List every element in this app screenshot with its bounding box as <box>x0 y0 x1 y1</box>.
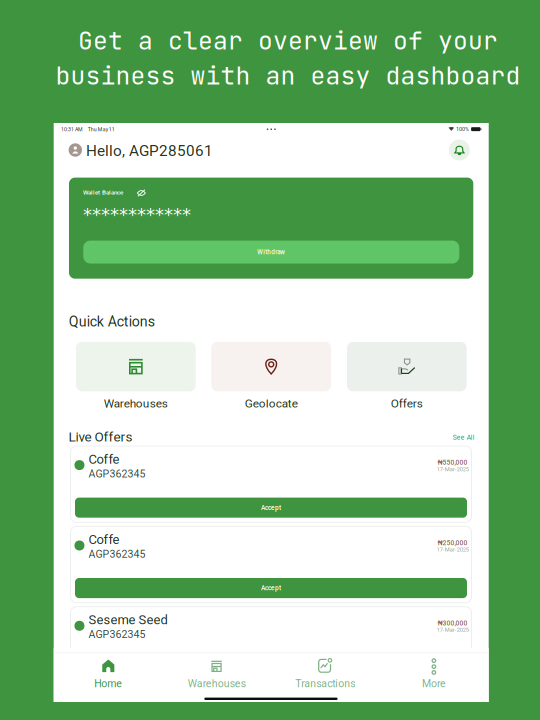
staticText: ₦250,000 <box>438 539 468 547</box>
staticText: ₦550,000 <box>438 459 468 466</box>
staticText: Transactions <box>295 677 355 690</box>
staticText: AGP362345 <box>88 628 145 641</box>
button[interactable]: Accept <box>75 578 467 598</box>
staticText: Accept <box>261 584 281 592</box>
staticText: 17-Mar-2025 <box>437 627 469 633</box>
staticText: Warehouses <box>188 677 246 690</box>
button[interactable]: Geolocate <box>211 342 331 391</box>
staticText: Hello, AGP285061 <box>86 142 213 160</box>
staticText: 100% <box>456 126 469 132</box>
button[interactable]: Offers <box>347 342 467 391</box>
staticText: AGP362345 <box>88 548 145 560</box>
staticText: 17-Mar-2025 <box>437 546 469 553</box>
button[interactable]: Hide balance <box>137 189 146 197</box>
button[interactable]: Warehouses <box>76 342 196 391</box>
button[interactable]: See All <box>415 433 475 441</box>
staticText: Home <box>94 677 122 690</box>
staticText: ************ <box>83 204 191 225</box>
staticText: Seseme Seed <box>89 612 168 627</box>
staticText: Geolocate <box>245 397 298 410</box>
staticText: Wallet Balance <box>83 189 123 196</box>
staticText: business with an easy dashboard <box>55 59 520 92</box>
staticText: Withdraw <box>257 248 285 256</box>
staticText: ₦300,000 <box>438 619 468 627</box>
button[interactable]: Warehouses <box>167 655 267 695</box>
staticText: Offers <box>391 397 423 410</box>
staticText: Coffe <box>89 532 120 547</box>
staticText: 10:31 AM <box>61 126 83 132</box>
button[interactable]: Transactions <box>275 655 375 695</box>
staticText: 17-Mar-2025 <box>437 466 469 473</box>
staticText: Accept <box>261 504 281 511</box>
staticText: See All <box>453 433 475 441</box>
button[interactable]: Withdraw <box>83 241 459 263</box>
staticText: AGP362345 <box>88 468 145 480</box>
staticText: Quick Actions <box>69 313 155 330</box>
staticText: Live Offers <box>69 429 133 445</box>
staticText: More <box>422 677 446 690</box>
staticText: Warehouses <box>104 397 168 410</box>
button[interactable]: Accept <box>75 658 467 678</box>
staticText: Coffe <box>89 452 120 467</box>
staticText: Thu May 11 <box>88 126 115 132</box>
staticText: Get a clear overview of your <box>78 24 498 57</box>
button[interactable]: More <box>384 655 484 695</box>
button[interactable]: Accept <box>75 498 467 518</box>
button[interactable]: Home <box>58 655 158 695</box>
button[interactable]: Notifications <box>449 139 470 160</box>
